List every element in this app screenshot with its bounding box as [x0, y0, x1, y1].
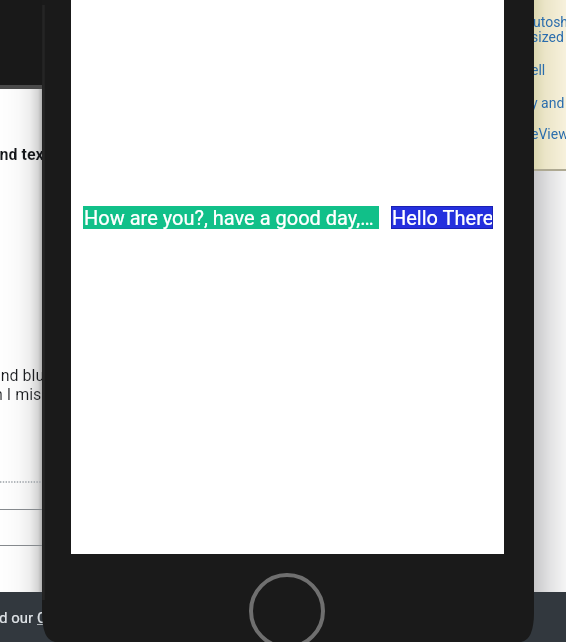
staticText: and blu [0, 366, 45, 385]
staticText: y and [531, 95, 565, 111]
button[interactable]: utosh [533, 14, 566, 45]
staticText: How are you?, have a good day,… [84, 206, 374, 229]
button[interactable]: ell [531, 62, 566, 78]
button[interactable]: Home [249, 573, 325, 642]
staticText: n I mis [0, 385, 42, 404]
staticText: and tex [0, 145, 44, 164]
staticText: sized [531, 29, 564, 45]
staticText: utosh [533, 14, 566, 30]
button[interactable]: d our [0, 609, 47, 627]
button[interactable]: How are you?, have a good day,… [83, 206, 379, 229]
button[interactable]: y and [531, 95, 566, 111]
button[interactable]: Hello There [391, 206, 493, 229]
staticText: C [37, 609, 47, 627]
staticText: ell [531, 62, 546, 78]
staticText: eView [531, 126, 566, 142]
staticText: Hello There [392, 206, 494, 229]
staticText: d our [0, 609, 37, 627]
button[interactable]: eView [531, 126, 566, 142]
